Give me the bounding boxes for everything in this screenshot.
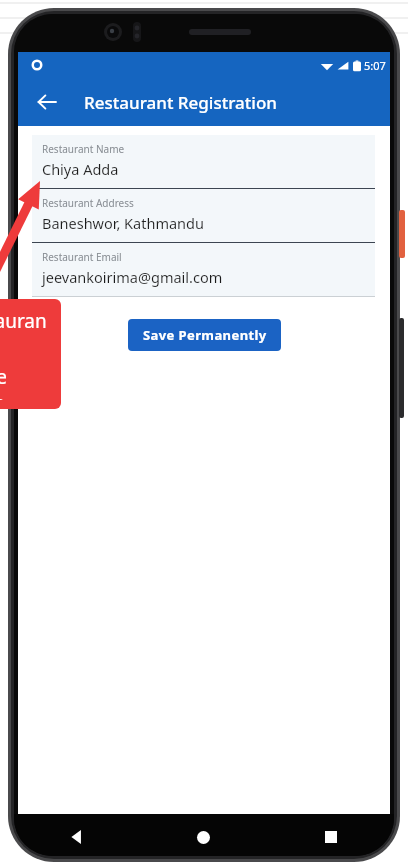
button[interactable]: Save Permanently — [128, 319, 281, 351]
button[interactable]: Back — [14, 818, 140, 856]
staticText: Restaurant Address — [42, 196, 134, 210]
staticText: Restaurant Name — [42, 142, 125, 156]
staticText: Chiya Adda — [42, 159, 119, 179]
staticText: 5:07 — [364, 58, 386, 73]
staticText: name given — [0, 364, 53, 400]
staticText: Baneshwor, Kathmandu — [42, 213, 204, 233]
staticText: Restaurant Registration — [84, 91, 277, 114]
button[interactable]: Restaurant Email — [32, 243, 375, 297]
button[interactable]: Recent apps — [267, 818, 394, 856]
button[interactable]: Restaurant Address — [32, 189, 375, 243]
button[interactable]: Restaurant Name — [32, 135, 375, 189]
staticText: jeevankoirima@gmail.com — [42, 267, 223, 287]
button[interactable]: Home — [140, 818, 267, 856]
staticText: Restaurant — [0, 308, 53, 360]
staticText: Save Permanently — [143, 326, 267, 344]
button[interactable]: Back — [28, 83, 66, 121]
staticText: Restaurant Email — [42, 250, 122, 264]
